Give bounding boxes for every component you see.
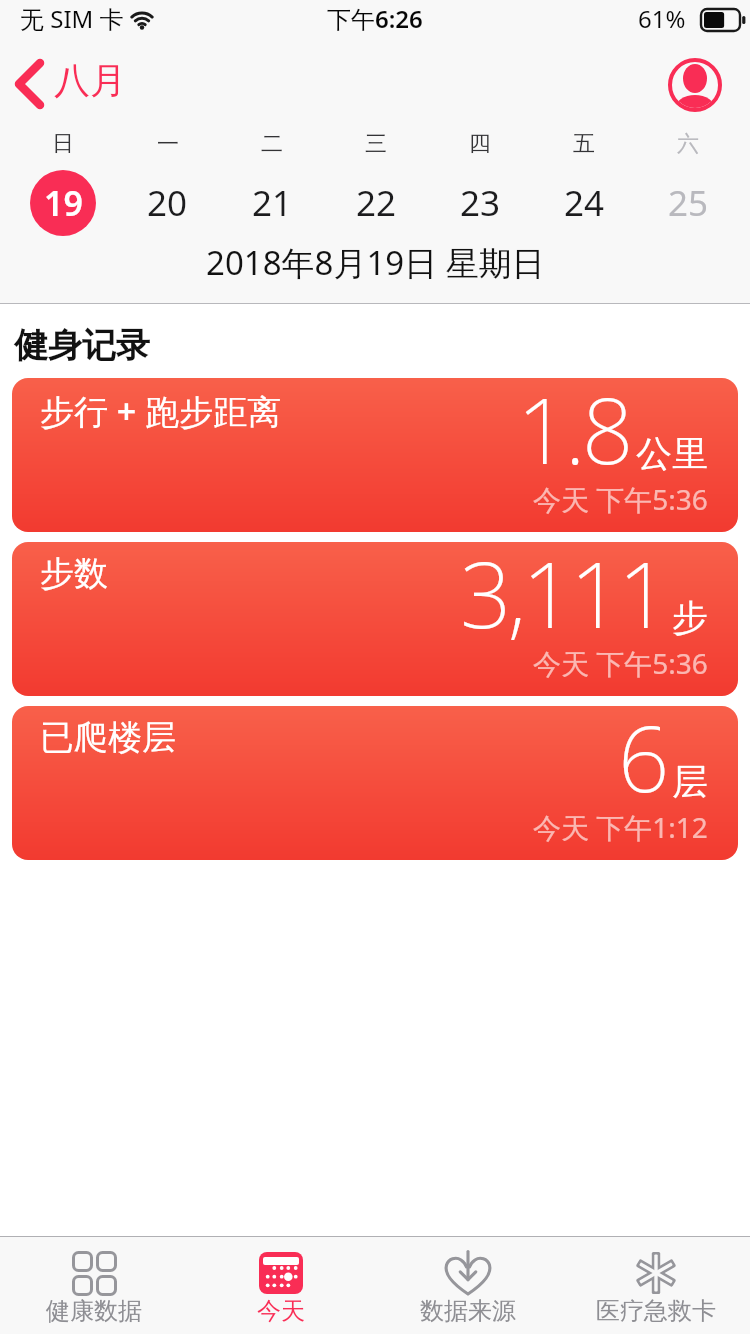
staticText: 今天: [257, 1296, 305, 1326]
staticText: 三: [365, 130, 387, 156]
button[interactable]: 数据来源: [374, 1237, 562, 1334]
staticText: 六: [677, 130, 699, 156]
staticText: 今天 下午5:36: [533, 480, 708, 518]
staticText: 今天 下午1:12: [533, 808, 708, 846]
staticText: 61%: [638, 2, 686, 35]
button[interactable]: 20: [115, 170, 220, 236]
staticText: 3,111: [460, 542, 666, 655]
staticText: 步行 + 跑步距离: [40, 388, 282, 434]
staticText: 今天 下午5:36: [533, 644, 708, 682]
button[interactable]: 23: [428, 170, 532, 236]
button[interactable]: 八月: [54, 58, 126, 103]
staticText: 五: [573, 130, 595, 156]
button[interactable]: [14, 60, 44, 108]
button[interactable]: 19: [10, 170, 115, 236]
staticText: 21: [252, 179, 293, 227]
button[interactable]: 25: [636, 170, 740, 236]
button[interactable]: 今天: [187, 1237, 374, 1334]
staticText: 健康数据: [46, 1296, 142, 1326]
staticText: 四: [469, 130, 491, 156]
button[interactable]: 24: [532, 170, 636, 236]
staticText: 健身记录: [14, 324, 150, 367]
staticText: 20: [147, 179, 188, 227]
staticText: 二: [261, 130, 283, 156]
staticText: 日: [52, 130, 74, 156]
button[interactable]: 已爬楼层: [12, 706, 738, 860]
staticText: 步: [672, 595, 708, 640]
staticText: 6: [618, 706, 666, 819]
staticText: 医疗急救卡: [596, 1296, 716, 1326]
staticText: 1.8: [517, 378, 630, 491]
staticText: 25: [668, 179, 709, 227]
staticText: 2018年8月19日 星期日: [206, 240, 545, 285]
staticText: 已爬楼层: [40, 716, 176, 759]
staticText: 层: [672, 759, 708, 804]
staticText: 24: [564, 179, 605, 227]
staticText: 19: [44, 180, 83, 226]
staticText: 公里: [636, 431, 708, 476]
staticText: 23: [460, 179, 501, 227]
staticText: 无 SIM 卡: [20, 2, 124, 35]
button[interactable]: 步数: [12, 542, 738, 696]
staticText: 数据来源: [420, 1296, 516, 1326]
staticText: 22: [356, 179, 397, 227]
button[interactable]: 健康数据: [0, 1237, 187, 1334]
staticText: 步数: [40, 552, 108, 595]
button[interactable]: 医疗急救卡: [562, 1237, 750, 1334]
button[interactable]: 22: [324, 170, 428, 236]
button[interactable]: [667, 57, 723, 113]
button[interactable]: 步行 + 跑步距离: [12, 378, 738, 532]
staticText: 下午6:26: [327, 2, 423, 35]
button[interactable]: 21: [220, 170, 324, 236]
staticText: 一: [157, 130, 179, 156]
